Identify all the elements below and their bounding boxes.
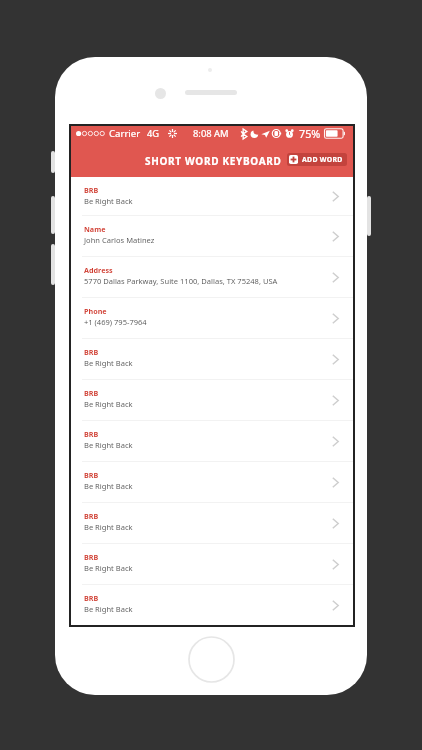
staticText: Carrier [109, 127, 141, 140]
staticText: 5770 Dallas Parkway, Suite 1100, Dallas,… [84, 276, 278, 286]
staticText: Address [84, 265, 113, 275]
button[interactable]: Add word [287, 153, 347, 166]
staticText: BRB [84, 552, 99, 562]
staticText: Name [84, 224, 106, 234]
staticText: Be Right Back [84, 522, 133, 532]
staticText: BRB [84, 511, 99, 521]
staticText: BRB [84, 429, 99, 439]
staticText: Be Right Back [84, 440, 133, 450]
staticText: BRB [84, 185, 99, 195]
staticText: BRB [84, 593, 99, 603]
button[interactable]: BRB [71, 421, 353, 462]
button[interactable]: Address [71, 257, 353, 298]
staticText: John Carlos Matinez [84, 235, 155, 245]
staticText: Be Right Back [84, 481, 133, 491]
staticText: 4G [147, 127, 160, 140]
button[interactable]: BRB [71, 462, 353, 503]
staticText: Be Right Back [84, 358, 133, 368]
button[interactable]: BRB [71, 503, 353, 544]
staticText: +1 (469) 795-7964 [84, 317, 147, 327]
button[interactable]: BRB [71, 544, 353, 585]
staticText: Be Right Back [84, 604, 133, 614]
staticText: 75% [299, 126, 321, 141]
staticText: ADD WORD [302, 155, 343, 164]
staticText: SHORT WORD KEYBOARD [145, 154, 282, 168]
button[interactable]: BRB [71, 339, 353, 380]
button[interactable]: BRB [71, 177, 353, 216]
button[interactable]: BRB [71, 585, 353, 625]
staticText: Phone [84, 306, 107, 316]
staticText: BRB [84, 347, 99, 357]
staticText: Be Right Back [84, 563, 133, 573]
staticText: BRB [84, 388, 99, 398]
staticText: Be Right Back [84, 196, 133, 206]
staticText: BRB [84, 470, 99, 480]
button[interactable]: Name [71, 216, 353, 257]
button[interactable]: BRB [71, 380, 353, 421]
staticText: Be Right Back [84, 399, 133, 409]
button[interactable]: Phone [71, 298, 353, 339]
button[interactable]: Home [188, 636, 235, 683]
staticText: 8:08 AM [193, 127, 229, 140]
